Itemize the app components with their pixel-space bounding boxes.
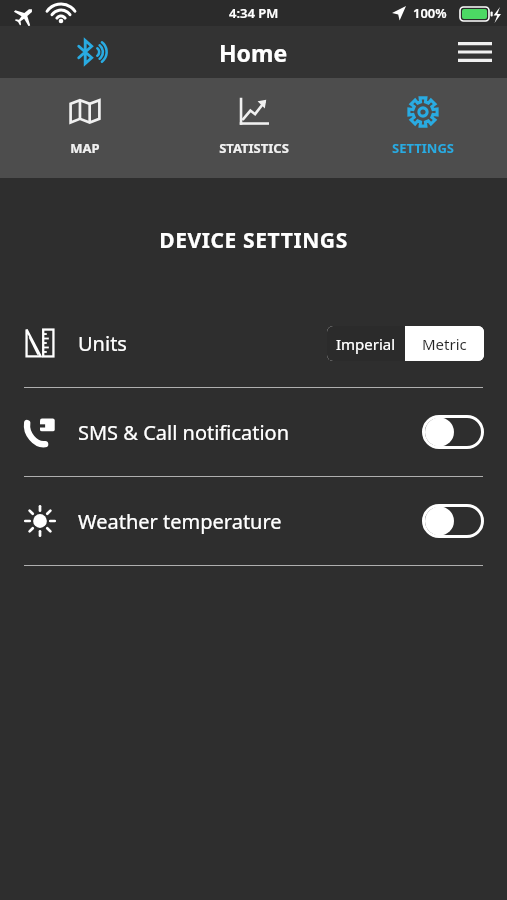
staticText: Weather temperature bbox=[78, 508, 422, 535]
button[interactable]: Metric bbox=[405, 326, 484, 361]
staticText: DEVICE SETTINGS bbox=[0, 226, 507, 255]
button[interactable]: Units bbox=[0, 299, 507, 387]
button[interactable]: Toggle, off bbox=[422, 504, 484, 538]
staticText: MAP bbox=[70, 139, 100, 157]
button[interactable]: MAP bbox=[0, 78, 169, 178]
button[interactable]: Toggle, off bbox=[422, 415, 484, 449]
staticText: 4:34 PM bbox=[229, 4, 279, 22]
button[interactable]: STATISTICS bbox=[169, 78, 338, 178]
button[interactable]: Menu bbox=[451, 28, 499, 76]
button[interactable]: Weather temperature bbox=[0, 477, 507, 565]
staticText: STATISTICS bbox=[219, 139, 289, 157]
staticText: Imperial bbox=[336, 334, 396, 354]
staticText: Metric bbox=[422, 334, 467, 354]
button[interactable]: SMS & Call notification bbox=[0, 388, 507, 476]
button[interactable]: Bluetooth connected bbox=[68, 29, 114, 75]
staticText: Home bbox=[219, 37, 288, 68]
button[interactable]: SETTINGS bbox=[338, 78, 507, 178]
staticText: SMS & Call notification bbox=[78, 419, 422, 446]
staticText: Units bbox=[78, 330, 327, 357]
staticText: SETTINGS bbox=[392, 139, 454, 157]
button[interactable]: Imperial bbox=[327, 326, 405, 361]
staticText: 100% bbox=[413, 4, 447, 22]
